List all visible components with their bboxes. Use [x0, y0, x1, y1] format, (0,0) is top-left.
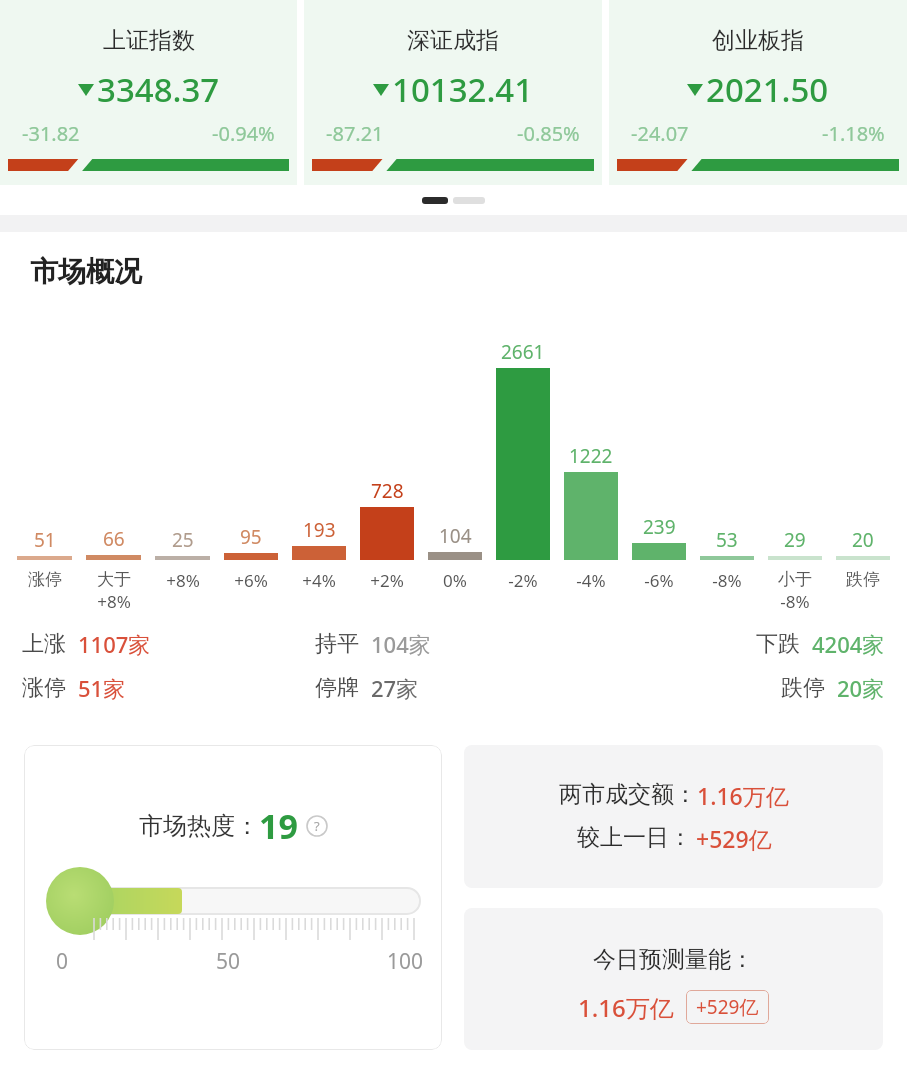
staticText: -1.18%	[822, 120, 885, 147]
button[interactable]: 深证成指	[304, 0, 602, 185]
staticText: -4%	[576, 569, 606, 592]
staticText: 193	[303, 517, 336, 543]
button[interactable]: 持平	[315, 629, 607, 659]
staticText: 20家	[837, 673, 885, 703]
staticText: 深证成指	[407, 26, 499, 55]
staticText: 104	[439, 523, 472, 549]
staticText: 涨停	[22, 674, 66, 702]
button[interactable]: 104	[421, 523, 489, 560]
staticText: -0.94%	[212, 120, 275, 147]
staticText: 1.16万亿	[578, 991, 674, 1024]
button[interactable]: 95	[217, 524, 285, 560]
button[interactable]: 239	[625, 514, 693, 560]
staticText: 29	[784, 527, 806, 553]
button[interactable]: 1222	[557, 443, 625, 560]
button[interactable]: 上涨	[22, 629, 315, 659]
staticText: 上涨	[22, 630, 66, 658]
button[interactable]: 2661	[489, 339, 557, 560]
staticText: -8%	[712, 569, 742, 592]
button[interactable]: 上证指数	[0, 0, 297, 185]
staticText: 95	[240, 524, 262, 550]
staticText: 4204家	[812, 629, 885, 659]
staticText: 50	[216, 947, 241, 976]
staticText: +4%	[302, 569, 336, 592]
staticText: +6%	[234, 569, 268, 592]
staticText: 停牌	[315, 674, 359, 702]
staticText: 大于	[97, 569, 131, 590]
staticText: -8%	[780, 590, 810, 613]
staticText: 100	[387, 947, 424, 976]
staticText: +8%	[166, 569, 200, 592]
staticText: 19	[259, 803, 298, 849]
button[interactable]: 66	[79, 526, 148, 560]
button[interactable]: 创业板指	[609, 0, 907, 185]
staticText: 0%	[443, 569, 467, 592]
staticText: 1107家	[78, 629, 151, 659]
staticText: 10132.41	[392, 67, 534, 112]
button[interactable]: 两市成交额：	[464, 745, 883, 888]
button[interactable]: 说明	[306, 815, 328, 837]
staticText: 27家	[371, 673, 419, 703]
button[interactable]: 25	[148, 527, 217, 560]
staticText: -24.07	[631, 120, 689, 147]
staticText: 创业板指	[712, 26, 804, 55]
button[interactable]: 53	[693, 527, 761, 560]
staticText: 持平	[315, 630, 359, 658]
staticText: 51家	[78, 673, 126, 703]
staticText: 104家	[371, 629, 431, 659]
staticText: 0	[56, 947, 69, 976]
staticText: 市场概况	[30, 254, 142, 289]
staticText: 2021.50	[706, 67, 829, 112]
staticText: 239	[643, 514, 676, 540]
staticText: 涨停	[28, 569, 62, 590]
staticText: 1.16万亿	[697, 780, 789, 811]
button[interactable]: 193	[285, 517, 353, 560]
button[interactable]: 市场热度：	[24, 745, 442, 1050]
staticText: +529亿	[696, 823, 772, 854]
button[interactable]: 下跌	[607, 629, 885, 659]
staticText: 20	[852, 527, 874, 553]
staticText: 上证指数	[103, 26, 195, 55]
staticText: 两市成交额：	[559, 780, 697, 809]
staticText: +529亿	[696, 994, 759, 1020]
staticText: 51	[34, 527, 56, 553]
button[interactable]: 涨停	[22, 673, 315, 703]
staticText: +2%	[370, 569, 404, 592]
staticText: 较上一日：	[577, 823, 692, 852]
staticText: 跌停	[781, 674, 825, 702]
staticText: -31.82	[22, 120, 80, 147]
staticText: -0.85%	[517, 120, 580, 147]
staticText: 市场热度：	[139, 811, 259, 841]
staticText: 1222	[569, 443, 613, 469]
staticText: 2661	[501, 339, 545, 365]
button[interactable]: 728	[353, 478, 421, 560]
button[interactable]: 51	[10, 527, 79, 560]
button[interactable]: 29	[761, 527, 829, 560]
staticText: 今日预测量能：	[593, 945, 754, 974]
staticText: 25	[172, 527, 194, 553]
staticText: 跌停	[846, 569, 880, 590]
button[interactable]: 停牌	[315, 673, 607, 703]
button[interactable]: 今日预测量能：	[464, 908, 883, 1050]
staticText: +8%	[97, 590, 131, 613]
button[interactable]: 跌停	[607, 673, 885, 703]
staticText: 53	[716, 527, 738, 553]
staticText: 66	[103, 526, 125, 552]
button[interactable]: 20	[829, 527, 897, 560]
staticText: 小于	[778, 569, 812, 590]
staticText: 下跌	[756, 630, 800, 658]
staticText: ?	[314, 817, 320, 835]
staticText: -6%	[644, 569, 674, 592]
staticText: -87.21	[326, 120, 384, 147]
staticText: 728	[371, 478, 404, 504]
staticText: -2%	[508, 569, 538, 592]
staticText: 3348.37	[97, 67, 220, 112]
